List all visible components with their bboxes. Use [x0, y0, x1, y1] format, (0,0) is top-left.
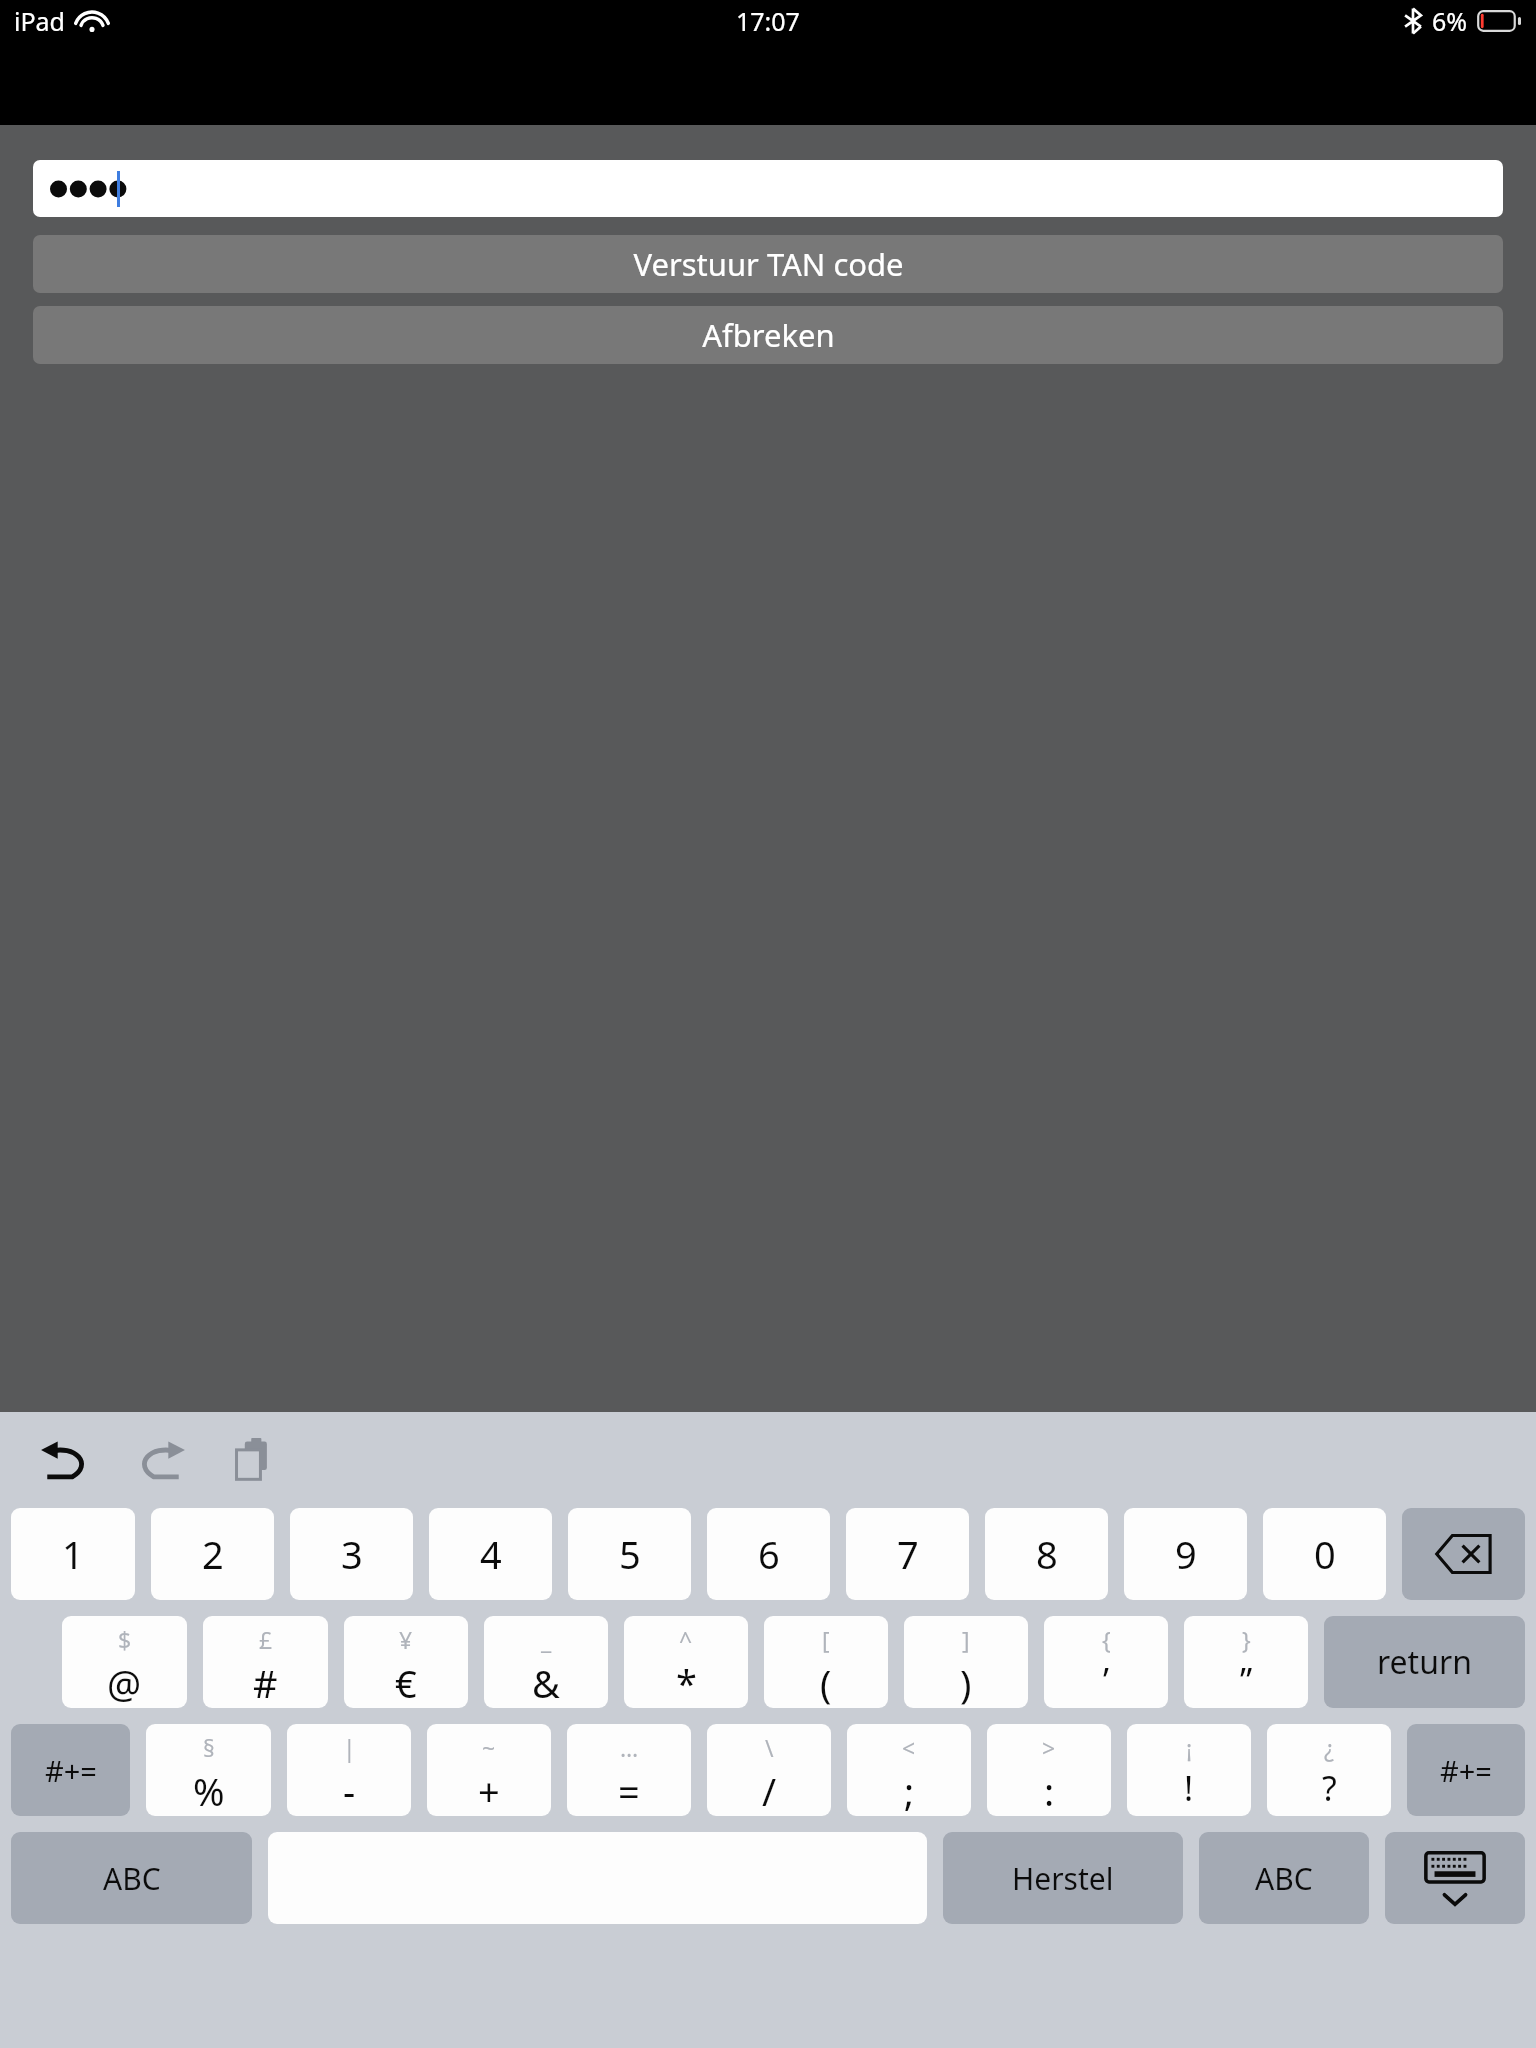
staticText: 8	[1036, 1528, 1058, 1580]
staticText: &	[532, 1657, 560, 1708]
staticText: ~	[482, 1732, 496, 1763]
staticText: Herstel	[1012, 1858, 1114, 1899]
staticText: Verstuur TAN code	[633, 243, 904, 285]
staticText: ABC	[1255, 1858, 1313, 1899]
staticText: 2	[202, 1528, 224, 1580]
button[interactable]: 5	[568, 1508, 691, 1600]
button[interactable]: }	[1184, 1616, 1308, 1708]
button[interactable]: <	[847, 1724, 971, 1816]
button[interactable]: {	[1044, 1616, 1168, 1708]
staticText: 9	[1175, 1528, 1197, 1580]
button[interactable]: 9	[1124, 1508, 1247, 1600]
staticText: (	[820, 1657, 832, 1708]
button[interactable]: Delete	[1402, 1508, 1525, 1600]
button[interactable]: Herstel	[943, 1832, 1183, 1924]
button[interactable]: ~	[427, 1724, 551, 1816]
staticText: #+=	[45, 1751, 97, 1790]
button[interactable]: 0	[1263, 1508, 1386, 1600]
button[interactable]: ¡	[1127, 1724, 1251, 1816]
staticText: ¡	[1186, 1732, 1193, 1763]
staticText: +	[478, 1765, 500, 1816]
staticText: iPad	[14, 4, 65, 38]
button[interactable]: 7	[846, 1508, 969, 1600]
staticText: ’	[1103, 1657, 1109, 1703]
button[interactable]: ¿	[1267, 1724, 1391, 1816]
staticText: ^	[679, 1624, 693, 1655]
button[interactable]: §	[146, 1724, 271, 1816]
button[interactable]: Verstuur TAN code	[33, 235, 1503, 293]
staticText: £	[259, 1624, 273, 1655]
staticText: *	[676, 1657, 697, 1708]
button[interactable]: 8	[985, 1508, 1108, 1600]
staticText: $	[118, 1624, 132, 1655]
button[interactable]: [	[764, 1616, 888, 1708]
staticText: >	[1042, 1732, 1056, 1763]
staticText: !	[1184, 1765, 1194, 1811]
staticText: #+=	[1440, 1751, 1492, 1790]
staticText: ¿	[1324, 1732, 1334, 1763]
button[interactable]: £	[203, 1616, 328, 1708]
button[interactable]: |	[287, 1724, 411, 1816]
staticText: 5	[619, 1528, 641, 1580]
button[interactable]: #+=	[11, 1724, 130, 1816]
staticText: …	[620, 1732, 639, 1763]
button[interactable]: ABC	[1199, 1832, 1369, 1924]
staticText: }	[1242, 1624, 1251, 1655]
button[interactable]: ABC	[11, 1832, 252, 1924]
button[interactable]: Undo	[30, 1424, 102, 1496]
staticText: /	[762, 1765, 777, 1816]
staticText: -	[343, 1765, 356, 1816]
button[interactable]: #+=	[1407, 1724, 1525, 1816]
staticText: =	[618, 1765, 640, 1816]
button[interactable]: 4	[429, 1508, 552, 1600]
staticText: 4	[480, 1528, 502, 1580]
staticText: :	[1044, 1765, 1055, 1816]
staticText: <	[902, 1732, 916, 1763]
staticText: ]	[962, 1624, 970, 1655]
staticText: ;	[904, 1765, 915, 1816]
button[interactable]: $	[62, 1616, 187, 1708]
button[interactable]: ]	[904, 1616, 1028, 1708]
button[interactable]	[33, 160, 1503, 217]
staticText: 3	[341, 1528, 363, 1580]
staticText: |	[343, 1732, 356, 1763]
button[interactable]: \	[707, 1724, 831, 1816]
staticText: Afbreken	[702, 314, 835, 356]
button[interactable]: Paste	[218, 1424, 290, 1496]
staticText: {	[1102, 1624, 1111, 1655]
button[interactable]: Hide keyboard	[1385, 1832, 1525, 1924]
staticText: )	[960, 1657, 972, 1708]
button[interactable]: ¥	[344, 1616, 468, 1708]
button[interactable]: 3	[290, 1508, 413, 1600]
staticText: ¥	[399, 1624, 413, 1655]
staticText: ABC	[103, 1858, 161, 1899]
staticText: 0	[1314, 1528, 1336, 1580]
button[interactable]: Afbreken	[33, 306, 1503, 364]
button[interactable]: >	[987, 1724, 1111, 1816]
staticText: @	[107, 1657, 142, 1708]
staticText: ”	[1240, 1657, 1253, 1703]
button[interactable]: …	[567, 1724, 691, 1816]
staticText: [	[822, 1624, 830, 1655]
button[interactable]: 1	[11, 1508, 135, 1600]
staticText: 17:07	[736, 4, 800, 38]
button[interactable]: return	[1324, 1616, 1525, 1708]
staticText: \	[765, 1732, 774, 1763]
staticText: %	[193, 1765, 225, 1816]
staticText: 7	[897, 1528, 919, 1580]
staticText: 6	[758, 1528, 780, 1580]
staticText: 1	[62, 1528, 84, 1580]
staticText: ?	[1322, 1765, 1337, 1811]
button[interactable]: _	[484, 1616, 608, 1708]
button[interactable]: Redo	[124, 1424, 196, 1496]
button[interactable]: 6	[707, 1508, 830, 1600]
button[interactable]: 2	[151, 1508, 274, 1600]
staticText: €	[395, 1657, 417, 1708]
staticText: #	[253, 1657, 278, 1708]
staticText: _	[541, 1624, 552, 1655]
button[interactable]: ^	[624, 1616, 748, 1708]
staticText: §	[203, 1732, 215, 1763]
staticText: 6%	[1432, 4, 1468, 38]
staticText: return	[1377, 1640, 1472, 1684]
